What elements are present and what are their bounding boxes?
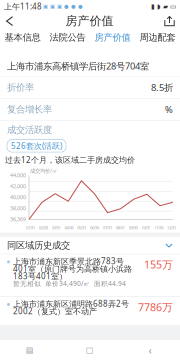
staticText: 成交活跃度 [7,124,52,136]
staticText: 04/30 [64,225,73,230]
staticText: 01/31 [26,225,35,230]
staticText: ▤ [26,345,34,355]
staticText: 上午11:48 [4,1,42,12]
button[interactable]: Recents [0,340,60,360]
button[interactable]: 法院公告 [45,29,90,46]
staticText: 2002（复式）室不动产 [13,306,97,316]
staticText: 38,000 [10,205,26,212]
staticText: ‹ [148,343,151,357]
staticText: 同区域历史成交 [7,240,70,251]
staticText: 折价率 [7,82,34,93]
staticText: 法院公告 [49,32,85,43]
staticText: 09/30 [129,225,138,230]
staticText: 06/30 [90,225,99,230]
button[interactable]: 上海市浦东新区季景北路783号 [0,254,180,296]
staticText: 7786万 [138,300,173,314]
staticText: 房产价值 [94,32,130,43]
staticText: 401室（原门牌号为高桥镇小浜路 [13,263,132,274]
staticText: ▮ ◗ ▰ ▭ [151,3,176,10]
button[interactable]: 上海市浦东新区浦明路688弄2号 [0,297,180,325]
staticText: 40,000 [10,194,26,201]
button[interactable]: 基本信息 [0,29,45,46]
staticText: 周边配套 [139,32,175,43]
staticText: 上海市浦东新区季景北路783号 [13,256,124,266]
button[interactable]: Home [60,340,120,360]
staticText: 11/30 [154,225,163,230]
staticText: 12/31 [167,225,176,230]
staticText: 10/31 [141,225,150,230]
staticText: 155万 [144,257,173,272]
staticText: ▣ ▣ ▣ ● ● ● [43,3,83,10]
staticText: 过去12个月，该区域二手房成交均价 [5,154,135,165]
staticText: 复合增长率 [7,104,52,115]
staticText: 183号401室） [13,271,67,281]
staticText: 上海市浦东新区浦明路688弄2号 [13,298,129,309]
staticText: 房产价值 [65,14,113,28]
staticText: 05/31 [77,225,86,230]
staticText: 526套次(活跃) [11,140,62,151]
staticText: 成交均价/㎡ [30,167,57,174]
button[interactable]: Back [0,13,20,29]
staticText: % [165,103,173,116]
staticText: 36,369 [10,216,26,223]
staticText: 02/28 [39,225,48,230]
button[interactable]: Back [120,340,180,360]
staticText: 上海市浦东高桥镇学后街28号704室 [7,60,149,72]
staticText: 8.5折 [151,81,173,94]
button[interactable]: 同区域历史成交 [0,237,180,254]
staticText: 基本信息 [4,32,40,43]
staticText: 08/31 [116,225,125,230]
staticText: 暂无相似 单价34,490/㎡ 面积44.94 [13,279,126,288]
staticText: 42,000 [10,183,26,190]
staticText: □ [86,345,94,355]
button[interactable]: Share [159,13,180,29]
staticText: 03/31 [52,225,61,230]
button[interactable]: 周边配套 [135,29,180,46]
staticText: 44,000 [10,172,26,179]
staticText: 07/31 [103,225,112,230]
button[interactable]: 房产价值 [90,29,135,46]
